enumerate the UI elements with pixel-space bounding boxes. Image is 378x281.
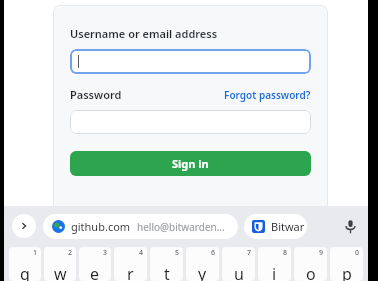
staticText: hello@bitwarden…	[137, 220, 225, 234]
button[interactable]: Voice input	[336, 212, 364, 240]
staticText: github.com	[71, 219, 131, 234]
staticText: 2	[68, 248, 73, 258]
button[interactable]: Expand suggestions	[12, 214, 36, 238]
staticText: r	[127, 263, 134, 281]
staticText: Bitwar	[271, 219, 305, 234]
staticText: 5	[175, 248, 180, 258]
staticText: 8	[283, 248, 288, 258]
staticText: i	[272, 263, 277, 281]
button[interactable]: 2	[44, 247, 76, 281]
button[interactable]: 8	[258, 247, 291, 281]
staticText: e	[90, 263, 100, 281]
staticText: Password	[70, 87, 122, 102]
button[interactable]: github.com	[43, 214, 238, 239]
button[interactable]: 7	[222, 247, 255, 281]
staticText: 0	[355, 248, 360, 258]
staticText: u	[234, 263, 244, 281]
button[interactable]: Bitwar	[244, 214, 307, 239]
staticText: t	[164, 263, 170, 281]
staticText: y	[198, 263, 207, 281]
button[interactable]: 1	[9, 247, 41, 281]
staticText: Username or email address	[70, 26, 218, 41]
button[interactable]: 0	[330, 247, 363, 281]
staticText: Forgot password?	[224, 88, 311, 102]
button[interactable]	[70, 110, 311, 134]
staticText: w	[54, 263, 67, 281]
staticText: o	[306, 263, 316, 281]
button[interactable]: 6	[186, 247, 219, 281]
staticText: 3	[103, 248, 108, 258]
button[interactable]	[70, 49, 311, 74]
button[interactable]: 5	[150, 247, 183, 281]
staticText: 1	[33, 248, 38, 258]
staticText: q	[20, 263, 30, 281]
button[interactable]: 3	[79, 247, 111, 281]
staticText: 7	[247, 248, 252, 258]
button[interactable]: Forgot password?	[224, 88, 311, 102]
staticText: Sign in	[172, 156, 209, 171]
button[interactable]: Sign in	[70, 151, 311, 176]
staticText: p	[342, 263, 352, 281]
staticText: 9	[319, 248, 324, 258]
staticText: 6	[211, 248, 216, 258]
button[interactable]: 9	[294, 247, 327, 281]
staticText: 4	[139, 248, 144, 258]
button[interactable]: 4	[114, 247, 147, 281]
